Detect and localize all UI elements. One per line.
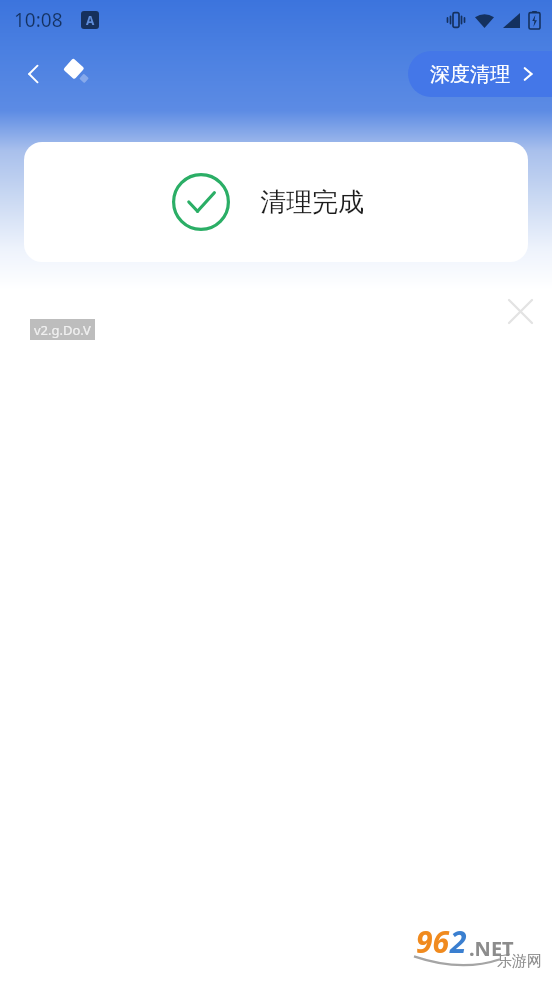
staticText: A [86,12,95,28]
staticText: 2 [450,921,467,962]
button[interactable]: Close [496,287,544,335]
staticText: 深度清理 [430,62,510,87]
button[interactable]: v2.g.Do.V [30,319,95,340]
button[interactable]: 深度清理 [408,51,552,97]
staticText: 10:08 [14,7,63,33]
staticText: .NET [469,935,514,962]
staticText: 清理完成 [260,186,364,219]
staticText: 96 [416,921,450,962]
staticText: 乐游网 [497,952,542,971]
button[interactable]: App logo [60,55,94,89]
staticText: v2.g.Do.V [34,321,91,339]
button[interactable]: 清理完成 [24,142,528,262]
button[interactable]: Back [10,50,58,98]
